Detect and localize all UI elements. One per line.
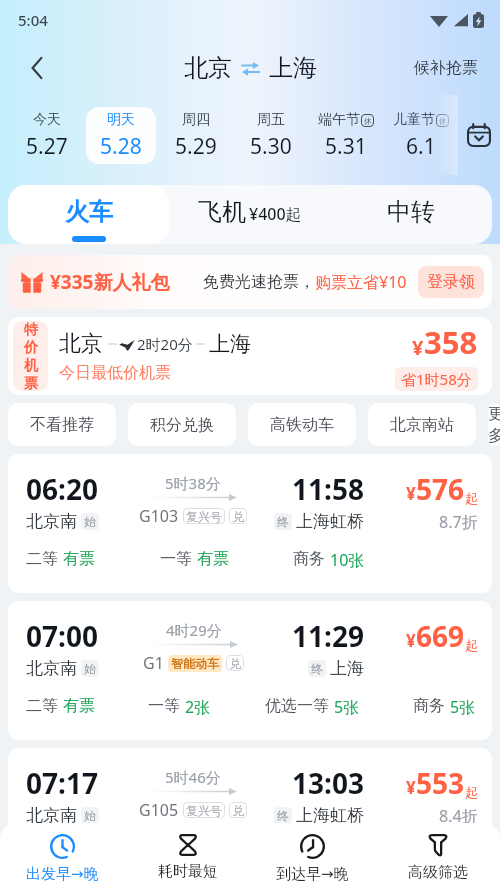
staticText: 4时29分 [166, 620, 222, 640]
staticText: 始 [84, 808, 96, 823]
button[interactable]: 登录领 [418, 266, 484, 298]
button[interactable]: 火车 [8, 185, 169, 244]
staticText: 有票 [63, 549, 95, 569]
staticText: 358 [424, 321, 478, 363]
staticText: 积分兑换 [150, 415, 214, 435]
staticText: 有票 [197, 549, 229, 569]
staticText: 候补抢票 [414, 58, 478, 78]
button[interactable]: 中转 [330, 185, 492, 244]
staticText: 登录领 [427, 272, 475, 292]
staticText: 2时20分 [137, 334, 193, 354]
staticText: 5:04 [18, 10, 48, 30]
button[interactable]: 06:20 [8, 454, 492, 593]
staticText: 上海虹桥 [296, 805, 364, 826]
staticText: 5时38分 [165, 473, 221, 493]
staticText: 06:20 [26, 470, 98, 508]
staticText: 到达早→晚 [276, 865, 349, 884]
staticText: 休 [439, 116, 447, 126]
staticText: 智能动车 [171, 656, 219, 671]
button[interactable]: 高铁动车 [248, 403, 356, 446]
button[interactable]: Back [15, 46, 59, 90]
staticText: 今日最低价机票 [59, 363, 171, 383]
staticText: 终 [277, 514, 289, 529]
button[interactable]: ¥335新人礼包 [8, 255, 492, 309]
button[interactable]: 积分兑换 [128, 403, 236, 446]
staticText: 北京 [59, 330, 103, 358]
button[interactable]: 端午节 [310, 107, 381, 164]
staticText: 兑 [232, 803, 244, 818]
staticText: 兑 [232, 509, 244, 524]
staticText: 5.30 [250, 132, 292, 161]
staticText: G1 [143, 652, 164, 674]
staticText: 终 [311, 661, 323, 676]
staticText: 北京南站 [390, 415, 454, 435]
staticText: 终 [277, 808, 289, 823]
staticText: 10张 [330, 549, 365, 571]
button[interactable]: 07:17 [8, 748, 492, 887]
staticText: 商务 [413, 696, 445, 716]
staticText: 一等 [164, 843, 196, 863]
staticText: ¥ [406, 629, 416, 652]
staticText: 11:29 [292, 617, 364, 655]
staticText: 商务 [302, 843, 334, 863]
staticText: 不看推荐 [30, 415, 94, 435]
staticText: 省1时58分 [401, 369, 472, 389]
staticText: 二等 [26, 696, 58, 716]
staticText: 票 [24, 375, 38, 391]
staticText: G105 [139, 799, 179, 821]
staticText: 中转 [387, 197, 435, 227]
staticText: 端午节 [318, 111, 360, 129]
button[interactable]: 高级筛选 [375, 823, 500, 889]
button[interactable]: 飞机 [169, 185, 330, 244]
staticText: 周四 [182, 111, 210, 129]
button[interactable]: 到达早→晚 [250, 823, 375, 889]
button[interactable]: 儿童节 [385, 107, 456, 164]
staticText: 明天 [107, 111, 135, 129]
button[interactable]: 特 [8, 317, 492, 395]
staticText: 二等 [26, 843, 58, 863]
staticText: 5张 [450, 696, 476, 718]
staticText: ¥ [406, 776, 416, 799]
staticText: 上海 [209, 331, 251, 357]
staticText: 有票 [63, 696, 95, 716]
button[interactable]: 07:00 [8, 601, 492, 740]
staticText: 始 [84, 661, 96, 676]
button[interactable]: 周五 [235, 107, 306, 164]
staticText: 北京南 [26, 805, 77, 826]
button[interactable]: 候补抢票 [406, 52, 486, 84]
button[interactable]: 周四 [160, 107, 231, 164]
staticText: 553 [416, 764, 465, 802]
staticText: ¥ [412, 334, 424, 361]
button[interactable]: 出发早→晚 [0, 823, 125, 889]
staticText: 07:00 [26, 617, 98, 655]
button[interactable]: 耗时最短 [125, 823, 250, 889]
button[interactable]: 今天 [12, 107, 82, 164]
staticText: 669 [416, 617, 465, 655]
staticText: 起 [465, 637, 478, 653]
staticText: 07:17 [26, 764, 98, 802]
button[interactable]: 明天 [86, 107, 156, 164]
staticText: 5.29 [175, 132, 217, 161]
staticText: 有票 [63, 843, 95, 863]
staticText: ¥335新人礼包 [50, 269, 170, 295]
staticText: 二等 [26, 549, 58, 569]
staticText: ¥400起 [249, 203, 302, 225]
staticText: 休 [364, 116, 372, 126]
staticText: 5时46分 [165, 767, 221, 787]
staticText: 576 [416, 470, 465, 508]
staticText: 复兴号 [186, 803, 222, 818]
button[interactable]: 更多 [488, 403, 500, 446]
staticText: 北京南 [26, 511, 77, 532]
staticText: 起 [465, 784, 478, 800]
staticText: 兑 [229, 656, 241, 671]
button[interactable]: 不看推荐 [8, 403, 116, 446]
staticText: 机 [24, 357, 38, 375]
staticText: 高级筛选 [408, 863, 468, 882]
staticText: 火车 [65, 197, 113, 227]
staticText: 上海 [269, 53, 317, 83]
staticText: 购票立省¥10 [315, 271, 407, 293]
button[interactable]: Pick date [458, 95, 500, 175]
button[interactable]: 北京南站 [368, 403, 476, 446]
